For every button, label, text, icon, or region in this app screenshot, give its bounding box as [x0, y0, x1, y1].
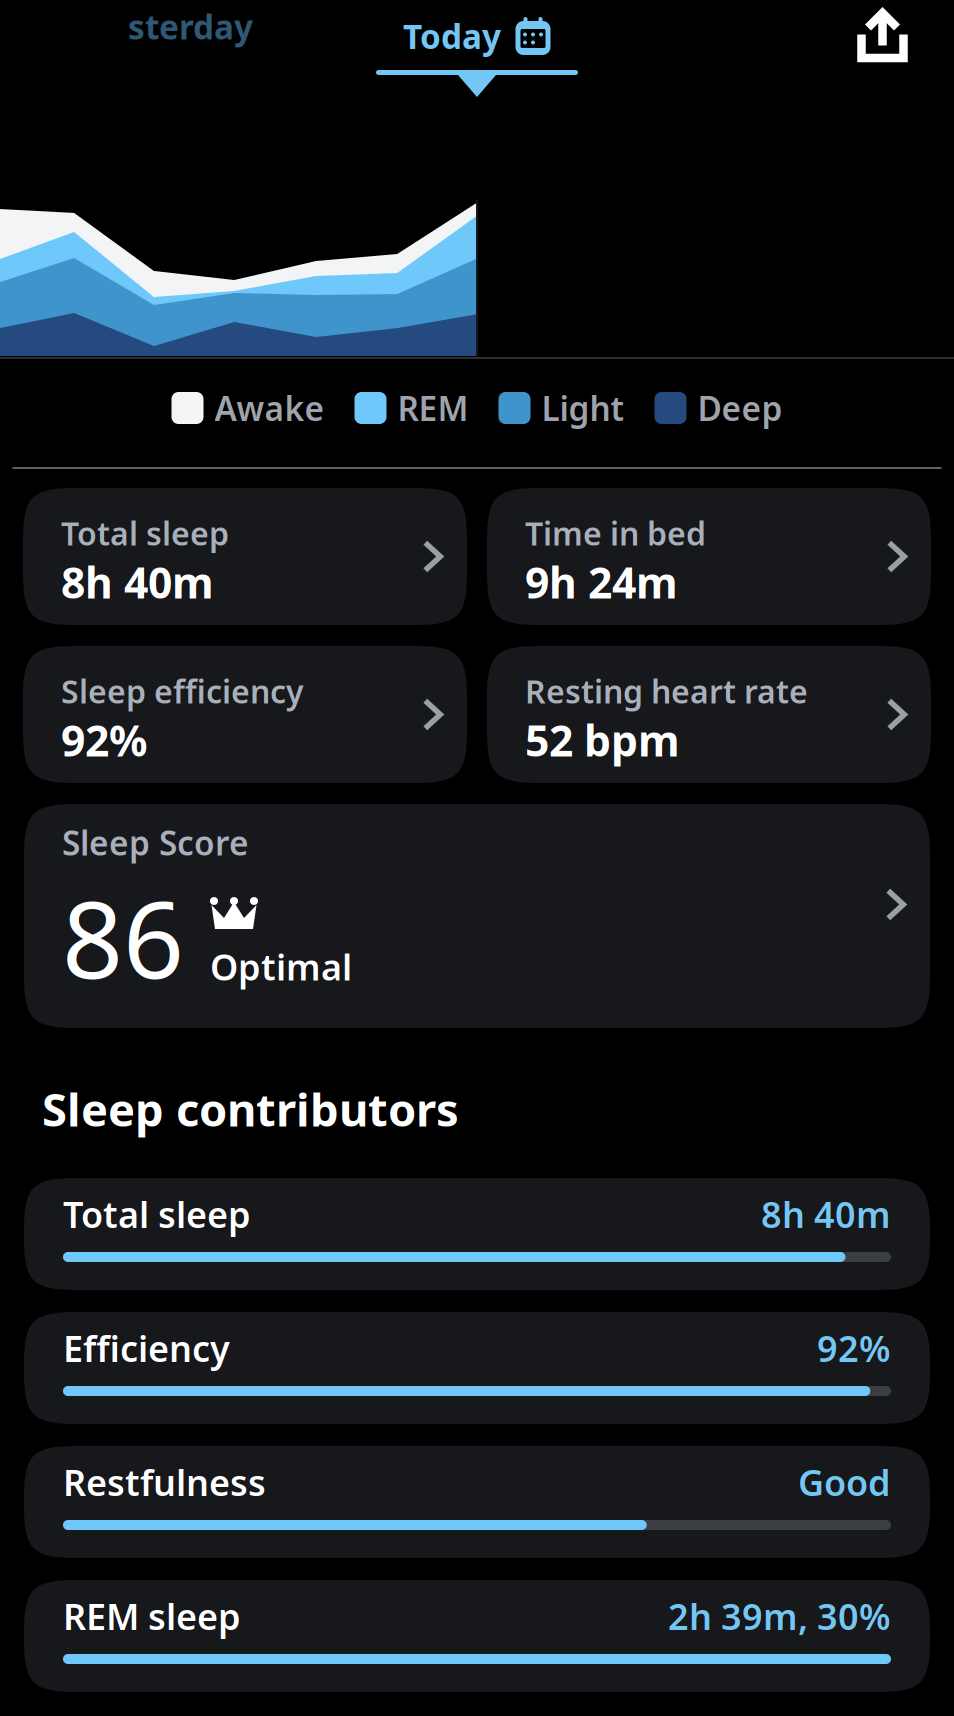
button[interactable]: sterday [128, 8, 253, 88]
staticText: sterday [128, 4, 253, 49]
button[interactable]: Share [857, 8, 908, 88]
staticText: 92% [817, 1324, 891, 1372]
staticText: Time in bed [525, 512, 706, 554]
staticText: Resting heart rate [525, 670, 808, 712]
staticText: Efficiency [63, 1324, 230, 1372]
staticText: 52 bpm [525, 712, 680, 768]
staticText: Sleep Score [62, 820, 249, 865]
staticText: Total sleep [63, 1190, 251, 1238]
button[interactable]: Sleep Score [24, 804, 930, 1028]
staticText: Total sleep [61, 512, 229, 554]
staticText: Good [798, 1458, 891, 1506]
staticText: Sleep efficiency [61, 670, 304, 712]
button[interactable]: Sleep efficiency [23, 646, 467, 783]
staticText: 8h 40m [761, 1190, 891, 1238]
button[interactable]: Total sleep [23, 488, 467, 625]
staticText: 8h 40m [61, 554, 214, 610]
button[interactable]: Restfulness [24, 1446, 930, 1558]
button[interactable]: REM sleep [24, 1580, 930, 1692]
button[interactable]: Total sleep [24, 1178, 930, 1290]
button[interactable]: Today [376, 0, 578, 97]
button[interactable]: Resting heart rate [487, 646, 931, 783]
button[interactable]: Time in bed [487, 488, 931, 625]
staticText: Awake [214, 386, 324, 430]
staticText: Restfulness [63, 1458, 266, 1506]
staticText: 9h 24m [525, 554, 678, 610]
staticText: 86 [62, 866, 184, 1008]
staticText: Light [541, 386, 624, 430]
staticText: Deep [697, 386, 782, 430]
staticText: 2h 39m, 30% [668, 1592, 891, 1640]
staticText: 92% [61, 712, 147, 768]
staticText: Sleep contributors [42, 1079, 459, 1139]
staticText: Optimal [210, 943, 352, 990]
staticText: REM [397, 386, 468, 430]
staticText: Today [403, 14, 501, 58]
button[interactable]: Efficiency [24, 1312, 930, 1424]
staticText: REM sleep [63, 1592, 241, 1640]
